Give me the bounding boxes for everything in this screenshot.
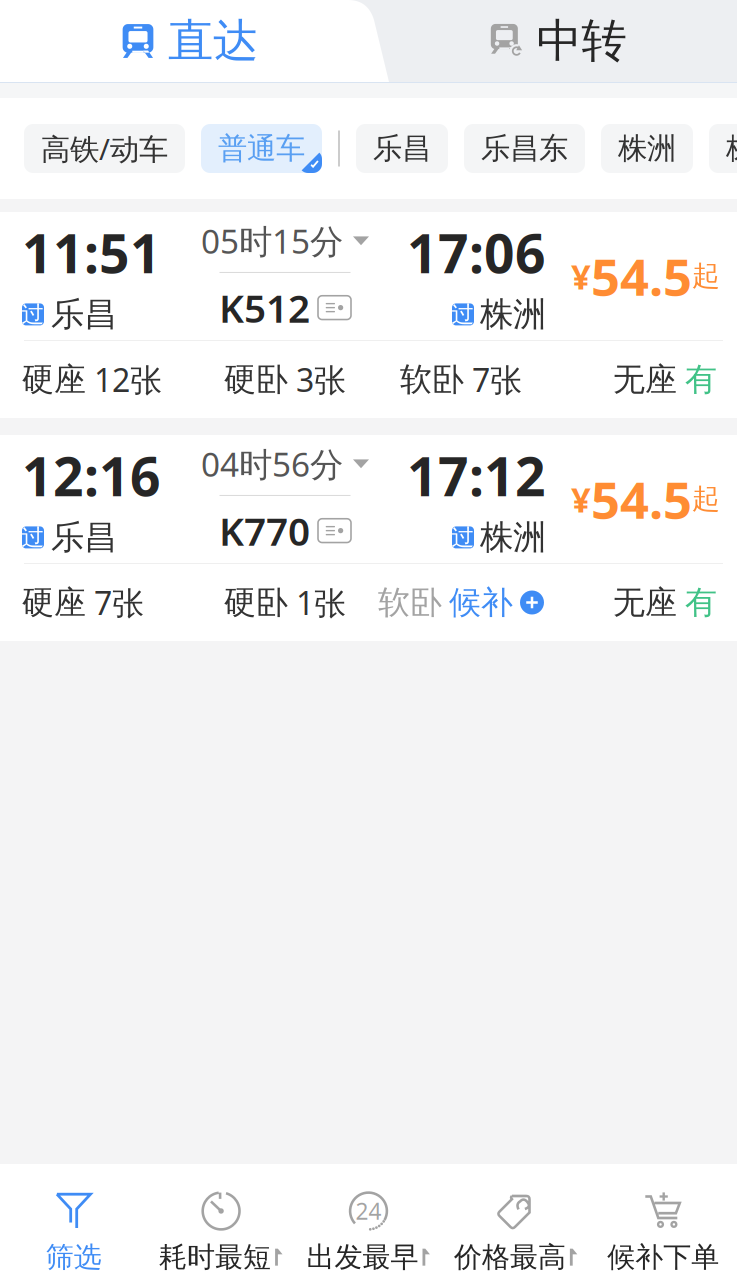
staticText: 1张 [296,581,346,624]
staticText: 起 [692,482,720,516]
staticText: K512 [219,282,310,333]
staticText: 普通车 [218,130,305,166]
button[interactable]: 筛选 [0,1164,147,1280]
staticText: 54.5 [591,465,692,533]
staticText: 株洲 [618,130,676,166]
staticText: 出发最早 [306,1240,418,1274]
button[interactable]: 高铁/动车 [24,124,185,173]
staticText: 有 [685,583,717,622]
staticText: ¥ [571,476,591,522]
staticText: 候补 [449,583,513,622]
staticText: 无座 [613,583,677,622]
button[interactable]: 株洲 [709,124,737,173]
button[interactable]: 价格最高 [442,1164,590,1280]
button[interactable]: 中转 [378,0,737,82]
staticText: 乐昌 [51,517,117,558]
staticText: 17:12 [407,440,546,511]
staticText: 过 [21,523,44,551]
staticText: 株洲 [480,294,546,335]
staticText: 过 [21,300,44,328]
staticText: 软卧 [378,583,442,622]
staticText: 乐昌东 [481,130,568,166]
staticText: 乐昌 [51,294,117,335]
staticText: 17:06 [407,217,546,288]
button[interactable]: 24 [295,1164,442,1280]
staticText: 直达 [168,13,258,69]
staticText: 05时15分 [201,219,343,263]
staticText: 筛选 [46,1240,102,1274]
staticText: 高铁/动车 [41,129,168,168]
staticText: 有 [685,360,717,399]
staticText: 株洲 [726,130,737,166]
staticText: 硬卧 [224,360,288,399]
staticText: 过 [451,523,474,551]
button[interactable]: 乐昌 [356,124,448,173]
staticText: 24 [355,1196,381,1226]
staticText: 耗时最短 [159,1240,271,1274]
staticText: 3张 [296,358,346,401]
staticText: 硬座 [22,583,86,622]
staticText: 12张 [94,358,162,401]
staticText: ¥ [571,253,591,299]
staticText: 软卧 [400,360,464,399]
staticText: 7张 [94,581,144,624]
button[interactable]: 耗时最短 [147,1164,295,1280]
staticText: 无座 [613,360,677,399]
staticText: 12:16 [22,440,161,511]
button[interactable]: 乐昌东 [464,124,585,173]
staticText: 价格最高 [454,1240,566,1274]
staticText: 11:51 [22,217,161,288]
staticText: 过 [451,300,474,328]
staticText: K770 [219,505,310,556]
button[interactable]: 普通车 [201,124,322,173]
staticText: 硬卧 [224,583,288,622]
button[interactable]: 株洲 [601,124,693,173]
button[interactable]: 直达 [0,0,378,82]
staticText: 起 [692,259,720,293]
staticText: 乐昌 [373,130,431,166]
staticText: 7张 [472,358,522,401]
staticText: 候补下单 [607,1240,719,1274]
staticText: 中转 [536,13,626,69]
staticText: 硬座 [22,360,86,399]
staticText: 54.5 [591,242,692,310]
staticText: 04时56分 [201,442,343,486]
staticText: 株洲 [480,517,546,558]
button[interactable]: 候补下单 [590,1164,737,1280]
